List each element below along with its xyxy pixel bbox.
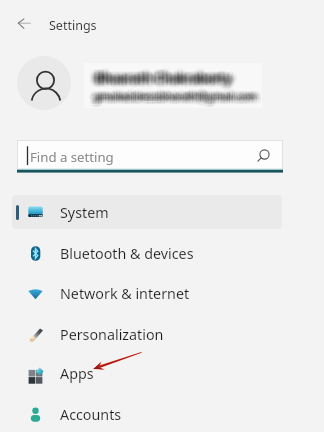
staticText: Bhaarath Chakraborty — [92, 65, 229, 82]
staticText: Bhaarath Chakraborty — [97, 74, 234, 91]
staticText: Bhaarath Chakraborty — [99, 72, 236, 89]
staticText: Bhaarath Chakraborty — [97, 73, 234, 90]
staticText: gmailaddressbharath@gmail.com — [91, 88, 255, 102]
staticText: gmailaddressbharath@gmail.com — [96, 89, 260, 103]
staticText: Bhaarath Chakraborty — [97, 73, 234, 90]
staticText: Bhaarath Chakraborty — [97, 66, 234, 83]
staticText: Bhaarath Chakraborty — [100, 73, 237, 90]
staticText: Bhaarath Chakraborty — [97, 65, 234, 82]
staticText: gmailaddressbharath@gmail.com — [96, 93, 260, 107]
staticText: Bhaarath Chakraborty — [95, 74, 232, 91]
staticText: Bhaarath Chakraborty — [91, 66, 228, 83]
staticText: gmailaddressbharath@gmail.com — [96, 86, 260, 100]
staticText: Bhaarath Chakraborty — [92, 68, 229, 85]
button[interactable]: Find a setting — [17, 140, 283, 173]
staticText: gmailaddressbharath@gmail.com — [93, 88, 257, 102]
staticText: Bhaarath Chakraborty — [98, 70, 235, 87]
staticText: gmailaddressbharath@gmail.com — [89, 91, 253, 105]
staticText: gmailaddressbharath@gmail.com — [94, 86, 258, 100]
staticText: Bhaarath Chakraborty — [89, 69, 226, 86]
staticText: gmailaddressbharath@gmail.com — [91, 92, 255, 106]
staticText: Bhaarath Chakraborty — [101, 70, 238, 87]
staticText: Bhaarath Chakraborty — [96, 66, 233, 83]
staticText: gmailaddressbharath@gmail.com — [91, 90, 255, 104]
staticText: gmailaddressbharath@gmail.com — [98, 90, 262, 104]
staticText: Bhaarath Chakraborty — [97, 68, 234, 85]
staticText: Bhaarath Chakraborty — [88, 70, 225, 87]
staticText: gmailaddressbharath@gmail.com — [89, 89, 253, 103]
staticText: Bhaarath Chakraborty — [91, 72, 228, 89]
staticText: gmailaddressbharath@gmail.com — [95, 92, 259, 106]
staticText: Bhaarath Chakraborty — [98, 74, 235, 91]
staticText: gmailaddressbharath@gmail.com — [93, 93, 257, 107]
staticText: Bhaarath Chakraborty — [89, 68, 226, 85]
staticText: Bhaarath Chakraborty — [92, 74, 229, 91]
staticText: Bhaarath Chakraborty — [96, 72, 233, 89]
staticText: Bhaarath Chakraborty — [100, 68, 237, 85]
staticText: Bhaarath Chakraborty — [94, 74, 231, 91]
staticText: gmailaddressbharath@gmail.com — [98, 87, 262, 101]
staticText: Bhaarath Chakraborty — [93, 66, 230, 83]
staticText: gmailaddressbharath@gmail.com — [91, 90, 255, 104]
staticText: gmailaddressbharath@gmail.com — [94, 85, 258, 99]
button[interactable]: Bluetooth & devices — [12, 236, 282, 270]
staticText: Bhaarath Chakraborty — [95, 74, 232, 91]
staticText: gmailaddressbharath@gmail.com — [94, 92, 258, 106]
staticText: gmailaddressbharath@gmail.com — [95, 88, 259, 102]
staticText: Bhaarath Chakraborty — [90, 71, 227, 88]
staticText: gmailaddressbharath@gmail.com — [89, 88, 253, 102]
staticText: Bhaarath Chakraborty — [97, 72, 234, 89]
staticText: gmailaddressbharath@gmail.com — [91, 93, 255, 107]
staticText: Bhaarath Chakraborty — [97, 68, 234, 85]
staticText: Bhaarath Chakraborty — [95, 65, 232, 82]
staticText: gmailaddressbharath@gmail.com — [93, 94, 257, 108]
staticText: Bhaarath Chakraborty — [96, 72, 233, 89]
staticText: gmailaddressbharath@gmail.com — [98, 92, 262, 106]
staticText: Bhaarath Chakraborty — [101, 68, 238, 85]
staticText: Bhaarath Chakraborty — [93, 74, 230, 91]
staticText: gmailaddressbharath@gmail.com — [91, 87, 255, 101]
staticText: gmailaddressbharath@gmail.com — [94, 93, 258, 107]
staticText: gmailaddressbharath@gmail.com — [88, 90, 252, 104]
staticText: Bhaarath Chakraborty — [99, 66, 236, 83]
staticText: Bhaarath Chakraborty — [95, 65, 232, 82]
button[interactable]: System — [12, 195, 282, 229]
staticText: Bhaarath Chakraborty — [95, 68, 232, 85]
staticText: gmailaddressbharath@gmail.com — [96, 88, 260, 102]
staticText: gmailaddressbharath@gmail.com — [90, 90, 254, 104]
staticText: gmailaddressbharath@gmail.com — [96, 87, 260, 101]
staticText: Bhaarath Chakraborty — [98, 73, 235, 90]
staticText: Bhaarath Chakraborty — [93, 66, 230, 83]
staticText: gmailaddressbharath@gmail.com — [97, 89, 261, 103]
staticText: Apps — [60, 364, 94, 383]
staticText: gmailaddressbharath@gmail.com — [98, 89, 262, 103]
staticText: gmailaddressbharath@gmail.com — [95, 90, 259, 104]
staticText: gmailaddressbharath@gmail.com — [90, 88, 254, 102]
staticText: gmailaddressbharath@gmail.com — [89, 90, 253, 104]
button[interactable]: Accounts — [12, 397, 282, 431]
button[interactable]: Apps — [12, 356, 282, 390]
staticText: gmailaddressbharath@gmail.com — [96, 87, 260, 101]
staticText: gmailaddressbharath@gmail.com — [96, 90, 260, 104]
staticText: Bhaarath Chakraborty — [94, 65, 231, 82]
staticText: Bhaarath Chakraborty — [92, 70, 229, 87]
staticText: Bhaarath Chakraborty — [100, 71, 237, 88]
staticText: Bhaarath Chakraborty — [95, 71, 232, 88]
staticText: gmailaddressbharath@gmail.com — [94, 87, 258, 101]
staticText: gmailaddressbharath@gmail.com — [95, 87, 259, 101]
staticText: Bhaarath Chakraborty — [96, 74, 233, 91]
staticText: gmailaddressbharath@gmail.com — [96, 90, 260, 104]
staticText: gmailaddressbharath@gmail.com — [89, 88, 253, 102]
button[interactable]: Back — [9, 11, 35, 37]
staticText: Bhaarath Chakraborty — [91, 71, 228, 88]
button[interactable]: Bhaarath Chakraborty — [0, 52, 283, 114]
staticText: Bhaarath Chakraborty — [93, 70, 230, 87]
staticText: gmailaddressbharath@gmail.com — [94, 92, 258, 106]
staticText: Bhaarath Chakraborty — [93, 66, 230, 83]
staticText: Bhaarath Chakraborty — [97, 68, 234, 85]
staticText: gmailaddressbharath@gmail.com — [94, 86, 258, 100]
staticText: gmailaddressbharath@gmail.com — [89, 89, 253, 103]
button[interactable]: Network & internet — [12, 276, 282, 310]
button[interactable]: Personalization — [12, 317, 282, 351]
staticText: gmailaddressbharath@gmail.com — [90, 93, 254, 107]
